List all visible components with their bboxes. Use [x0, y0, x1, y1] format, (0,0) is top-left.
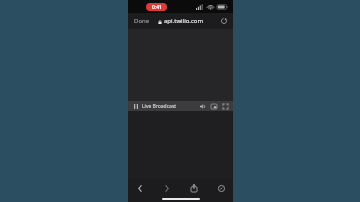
staticText: api.twilio.com: [164, 17, 204, 25]
staticText: 0:41: [152, 4, 162, 11]
button[interactable]: Open in Safari: [215, 182, 227, 194]
button[interactable]: Full screen: [221, 102, 229, 110]
button[interactable]: Picture in picture: [210, 102, 218, 110]
button[interactable]: Pause: [132, 102, 140, 110]
button[interactable]: Reload: [219, 16, 229, 26]
button[interactable]: Done: [132, 15, 152, 27]
button[interactable]: Back: [134, 182, 146, 194]
button[interactable]: Active call: [146, 3, 167, 11]
staticText: Live Broadcast: [142, 103, 177, 110]
button[interactable]: Forward: [161, 182, 173, 194]
button[interactable]: Share: [188, 182, 200, 194]
staticText: Done: [134, 17, 150, 25]
button[interactable]: Volume: [199, 102, 207, 110]
